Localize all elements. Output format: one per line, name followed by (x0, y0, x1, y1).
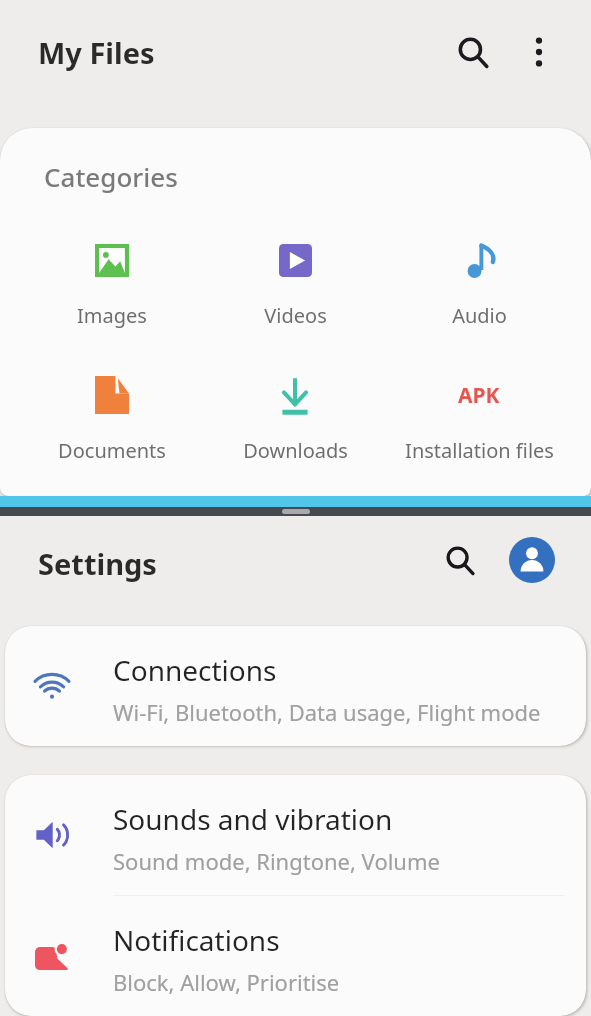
button[interactable]: APK (387, 371, 571, 464)
staticText: Settings (38, 544, 157, 583)
button[interactable]: Search (437, 537, 483, 583)
button[interactable]: Notifications (5, 896, 586, 1016)
button[interactable]: Search (450, 29, 496, 75)
staticText: Categories (44, 159, 178, 194)
staticText: Documents (58, 437, 166, 464)
staticText: Connections (113, 651, 277, 689)
button[interactable]: Sounds and vibration (5, 775, 586, 895)
staticText: Wi-Fi, Bluetooth, Data usage, Flight mod… (113, 697, 541, 727)
button[interactable]: Account (509, 537, 555, 583)
button[interactable]: Documents (20, 371, 203, 464)
staticText: Images (77, 302, 147, 329)
staticText: Audio (452, 302, 507, 329)
staticText: Block, Allow, Prioritise (113, 967, 340, 997)
button[interactable]: Videos (203, 236, 387, 329)
staticText: My Files (38, 33, 155, 72)
button[interactable]: Images (20, 236, 203, 329)
button[interactable]: Connections (5, 626, 586, 746)
staticText: Notifications (113, 921, 280, 959)
staticText: Videos (264, 302, 327, 329)
button[interactable]: Downloads (203, 371, 387, 464)
button[interactable]: More options (516, 29, 562, 75)
staticText: Sound mode, Ringtone, Volume (113, 846, 440, 876)
button[interactable]: Audio (387, 236, 571, 329)
staticText: APK (458, 381, 500, 410)
staticText: Downloads (243, 437, 348, 464)
staticText: Sounds and vibration (113, 800, 393, 838)
staticText: Installation files (405, 437, 554, 464)
